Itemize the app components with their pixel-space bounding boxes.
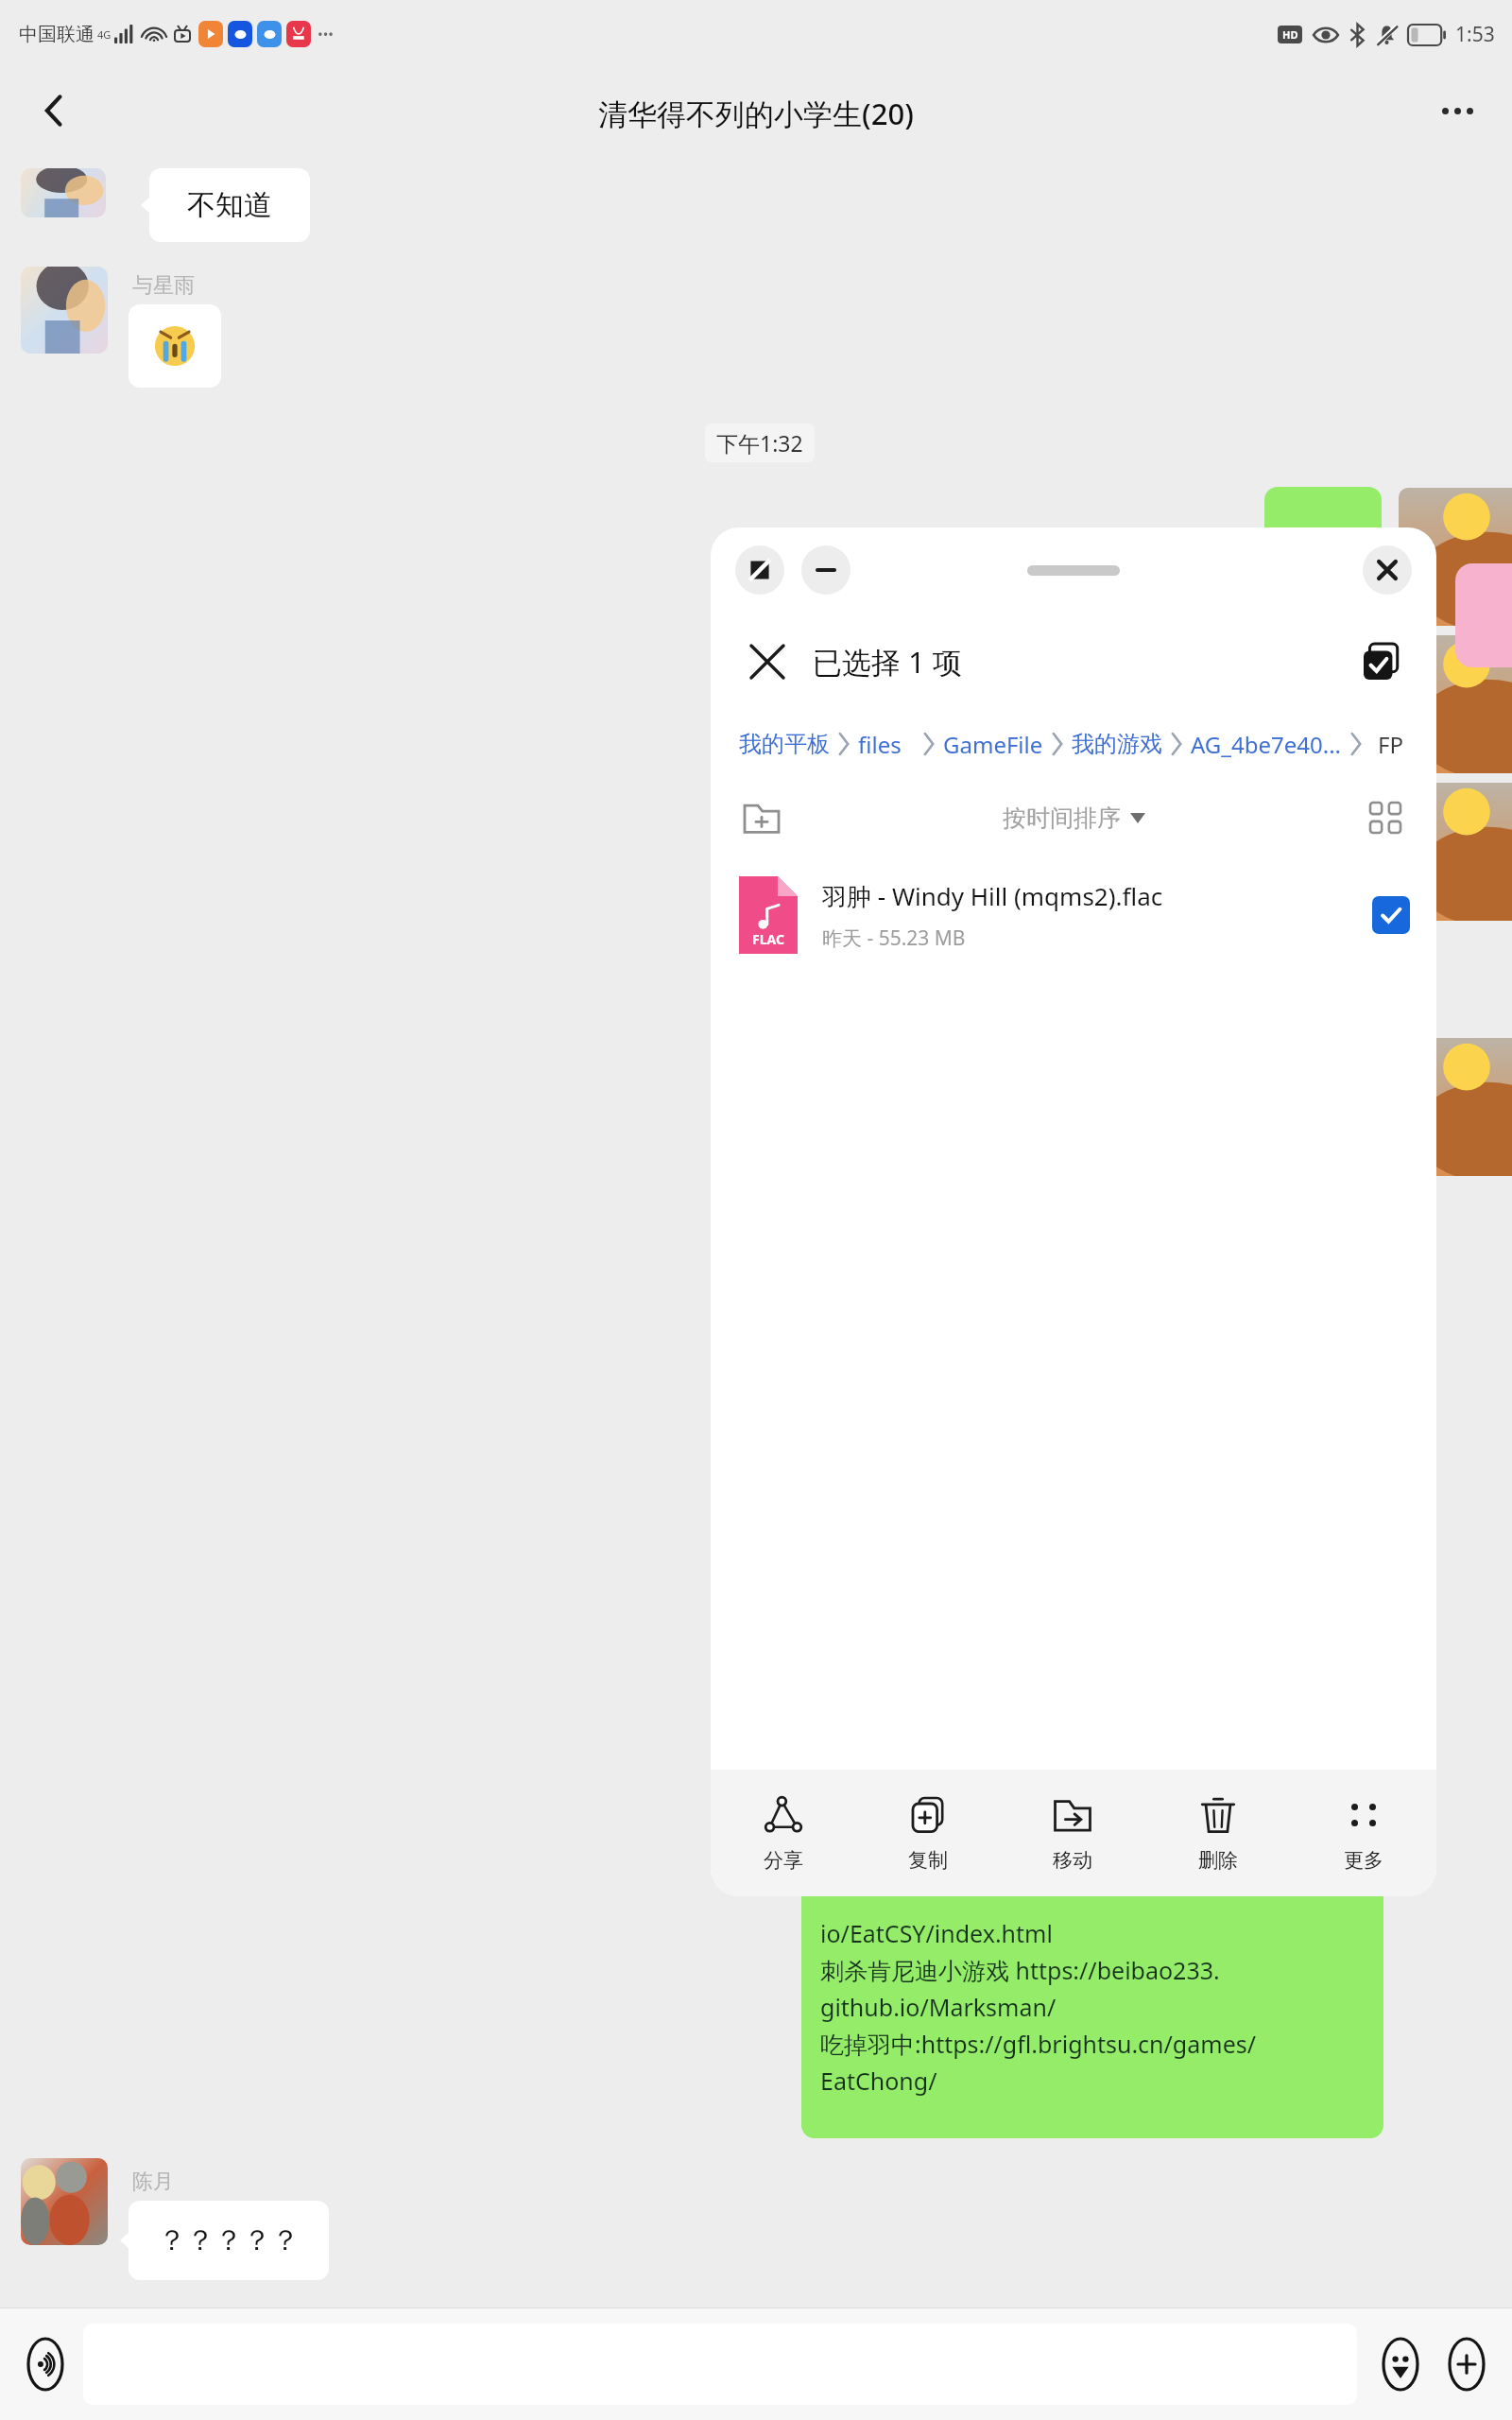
- staticText: ？？？？？: [158, 2222, 300, 2258]
- button[interactable]: AG_4be7e40...: [1191, 729, 1342, 760]
- staticText: 分享: [764, 1848, 803, 1873]
- staticText: GameFile: [943, 729, 1043, 760]
- button[interactable]: Select all: [1355, 635, 1408, 688]
- button[interactable]: Grid view: [1361, 793, 1410, 842]
- button[interactable]: GameFile: [943, 729, 1043, 760]
- staticText: 昨天 - 55.23 MB: [822, 925, 966, 952]
- button[interactable]: ？？？？？: [129, 2201, 329, 2280]
- button[interactable]: [1399, 1038, 1512, 1176]
- button[interactable]: files: [858, 729, 902, 760]
- staticText: 1:53: [1455, 21, 1495, 48]
- staticText: AG_4be7e40...: [1191, 729, 1342, 760]
- button[interactable]: [21, 267, 108, 354]
- staticText: 删除: [1198, 1848, 1238, 1873]
- button[interactable]: 我的平板: [739, 730, 830, 758]
- button[interactable]: 分享: [711, 1770, 855, 1896]
- button[interactable]: 删除: [1145, 1770, 1291, 1896]
- button[interactable]: More options: [1423, 77, 1491, 145]
- staticText: •••: [318, 25, 334, 43]
- button[interactable]: 我的游戏: [1072, 730, 1162, 758]
- button[interactable]: 更多: [1291, 1770, 1436, 1896]
- button[interactable]: Minimise: [801, 545, 850, 595]
- button[interactable]: [1399, 488, 1512, 626]
- staticText: github.io/Marksman/: [820, 1991, 1057, 2023]
- button[interactable]: 移动: [1000, 1770, 1145, 1896]
- staticText: 刺杀肯尼迪小游戏 https://beibao233.: [820, 1954, 1220, 1986]
- button[interactable]: [21, 168, 106, 217]
- staticText: 陈月: [132, 2169, 174, 2195]
- button[interactable]: 按时间排序: [1003, 804, 1145, 833]
- button[interactable]: [21, 2158, 108, 2245]
- staticText: HD: [1282, 27, 1298, 42]
- button[interactable]: io/EatCSY/index.html: [801, 1777, 1383, 2138]
- staticText: 已选择 1 项: [813, 642, 962, 682]
- staticText: 不知道: [187, 187, 272, 223]
- button[interactable]: Emoji: [1370, 2334, 1431, 2394]
- staticText: EatChong/: [820, 2065, 937, 2097]
- staticText: 按时间排序: [1003, 804, 1121, 833]
- staticText: 与星雨: [132, 272, 195, 299]
- staticText: 4G: [97, 27, 112, 42]
- button[interactable]: Selected: [1372, 896, 1410, 934]
- staticText: 清华得不列的小学生(20): [598, 94, 914, 133]
- button[interactable]: Back: [21, 77, 89, 145]
- button[interactable]: [1399, 635, 1512, 773]
- staticText: 中国联通: [19, 23, 94, 46]
- button[interactable]: FLAC: [711, 858, 1436, 972]
- button[interactable]: Cancel selection: [739, 633, 796, 690]
- staticText: 复制: [908, 1848, 948, 1873]
- button[interactable]: 不知道: [149, 168, 310, 242]
- button[interactable]: Close: [1363, 545, 1412, 595]
- button[interactable]: [129, 304, 221, 388]
- staticText: 我的游戏: [1072, 730, 1162, 758]
- staticText: 更多: [1344, 1848, 1383, 1873]
- staticText: 移动: [1053, 1848, 1092, 1873]
- button[interactable]: Voice input: [15, 2334, 76, 2394]
- staticText: files: [858, 729, 902, 760]
- staticText: 下午1:32: [716, 428, 803, 458]
- button[interactable]: [1399, 783, 1512, 921]
- button[interactable]: 复制: [855, 1770, 1000, 1896]
- button[interactable]: More: [1436, 2334, 1497, 2394]
- staticText: 我的平板: [739, 730, 830, 758]
- staticText: 吃掉羽中:https://gfl.brightsu.cn/games/: [820, 2028, 1257, 2060]
- button[interactable]: New folder: [735, 791, 788, 844]
- staticText: io/EatCSY/index.html: [820, 1917, 1053, 1949]
- staticText: 羽肿 - Windy Hill (mqms2).flac: [822, 879, 1163, 913]
- button[interactable]: [1027, 565, 1120, 576]
- staticText: FLAC: [752, 930, 784, 948]
- staticText: FP: [1378, 729, 1403, 760]
- button[interactable]: Toggle theme: [735, 545, 784, 595]
